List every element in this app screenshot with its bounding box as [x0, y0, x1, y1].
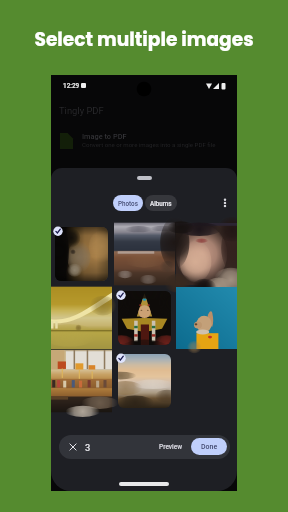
button[interactable]: Photo 8	[114, 350, 175, 412]
button[interactable]: Done	[191, 438, 227, 455]
staticText: Photos	[118, 200, 138, 207]
staticText: Done	[201, 443, 218, 451]
staticText: Preview	[159, 443, 183, 451]
staticText: Image to PDF	[82, 132, 127, 141]
button[interactable]: Photo 1	[51, 223, 112, 285]
button[interactable]: More options	[217, 190, 233, 216]
staticText: Albums	[150, 200, 172, 207]
button[interactable]: Photo 7	[51, 350, 112, 412]
button[interactable]: Photos	[113, 195, 143, 211]
button[interactable]: Photo 5	[114, 287, 175, 349]
staticText: 3	[85, 442, 91, 453]
staticText: Convert one or more images into a single…	[82, 141, 216, 148]
button[interactable]: Preview	[159, 439, 183, 455]
staticText: 12:29	[63, 82, 80, 90]
button[interactable]: Photo 3	[176, 223, 237, 285]
button[interactable]: Photo 6	[176, 287, 237, 349]
button[interactable]: Albums	[145, 195, 177, 211]
staticText: Select multiple images	[0, 26, 288, 52]
staticText: Tingly PDF	[59, 105, 104, 116]
button[interactable]: Photo 2	[114, 223, 175, 285]
button[interactable]: Photo 4	[51, 287, 112, 349]
button[interactable]: Clear selection	[63, 437, 83, 457]
